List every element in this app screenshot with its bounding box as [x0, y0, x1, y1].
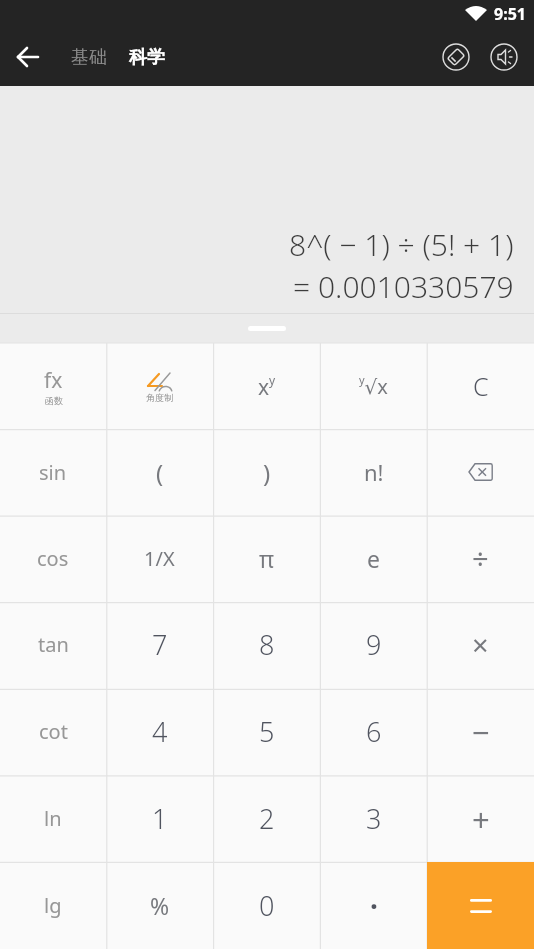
staticText: = 0.0010330579: [293, 266, 514, 307]
button[interactable]: n!: [320, 429, 427, 515]
button[interactable]: cot: [0, 688, 106, 775]
staticText: fx: [44, 366, 63, 395]
button[interactable]: ·: [320, 862, 427, 949]
button[interactable]: 基础: [71, 28, 107, 86]
staticText: (: [156, 456, 164, 489]
button[interactable]: 9: [320, 601, 427, 688]
staticText: 6: [366, 713, 382, 750]
staticText: sin: [39, 459, 67, 486]
staticText: 4: [152, 713, 168, 750]
button[interactable]: [0, 28, 56, 86]
staticText: 9: [366, 626, 382, 663]
staticText: −: [472, 711, 490, 753]
staticText: tan: [38, 631, 69, 658]
button[interactable]: ÷: [427, 515, 534, 601]
button[interactable]: 2: [213, 775, 320, 862]
staticText: cos: [37, 545, 69, 572]
button[interactable]: −: [427, 688, 534, 775]
staticText: 1: [152, 800, 168, 837]
button[interactable]: %: [106, 862, 213, 949]
button[interactable]: [480, 33, 528, 81]
button[interactable]: 8: [213, 601, 320, 688]
button[interactable]: [427, 862, 534, 949]
button[interactable]: [427, 429, 534, 515]
button[interactable]: 5: [213, 688, 320, 775]
button[interactable]: 6: [320, 688, 427, 775]
staticText: 1/X: [144, 545, 175, 572]
staticText: 函数: [45, 395, 63, 406]
button[interactable]: +: [427, 775, 534, 862]
staticText: π: [259, 543, 275, 574]
staticText: 8^( − 1) ÷ (5! + 1): [289, 224, 514, 265]
staticText: lg: [44, 892, 62, 919]
button[interactable]: 4: [106, 688, 213, 775]
button[interactable]: 7: [106, 601, 213, 688]
button[interactable]: sin: [0, 429, 106, 515]
button[interactable]: y√x: [320, 343, 427, 429]
button[interactable]: π: [213, 515, 320, 601]
button[interactable]: ln: [0, 775, 106, 862]
button[interactable]: 1/X: [106, 515, 213, 601]
staticText: +: [472, 798, 490, 840]
button[interactable]: 科学: [129, 28, 165, 86]
staticText: 科学: [129, 46, 165, 69]
staticText: 8: [259, 626, 275, 663]
staticText: C: [473, 369, 489, 403]
button[interactable]: xy: [213, 343, 320, 429]
staticText: ·: [370, 887, 378, 925]
button[interactable]: [434, 35, 478, 79]
button[interactable]: fx: [0, 343, 106, 429]
button[interactable]: lg: [0, 862, 106, 949]
staticText: y√x: [359, 372, 388, 400]
staticText: ÷: [472, 539, 489, 578]
button[interactable]: ): [213, 429, 320, 515]
button[interactable]: 角度制: [106, 343, 213, 429]
staticText: ln: [44, 805, 62, 832]
button[interactable]: e: [320, 515, 427, 601]
staticText: ×: [472, 625, 489, 664]
staticText: 角度制: [146, 392, 173, 403]
staticText: ): [263, 456, 271, 489]
button[interactable]: 3: [320, 775, 427, 862]
staticText: e: [367, 543, 380, 574]
button[interactable]: (: [106, 429, 213, 515]
staticText: 0: [259, 887, 275, 924]
staticText: 基础: [71, 46, 107, 69]
button[interactable]: tan: [0, 601, 106, 688]
staticText: 3: [366, 800, 382, 837]
button[interactable]: cos: [0, 515, 106, 601]
staticText: 7: [152, 626, 168, 663]
button[interactable]: 0: [213, 862, 320, 949]
staticText: cot: [39, 718, 68, 745]
button[interactable]: 1: [106, 775, 213, 862]
staticText: 2: [259, 800, 275, 837]
button[interactable]: C: [427, 343, 534, 429]
staticText: 5: [259, 713, 275, 750]
staticText: n!: [364, 457, 384, 487]
staticText: xy: [258, 372, 276, 401]
staticText: %: [150, 890, 170, 921]
button[interactable]: ×: [427, 601, 534, 688]
staticText: 9:51: [494, 3, 526, 25]
